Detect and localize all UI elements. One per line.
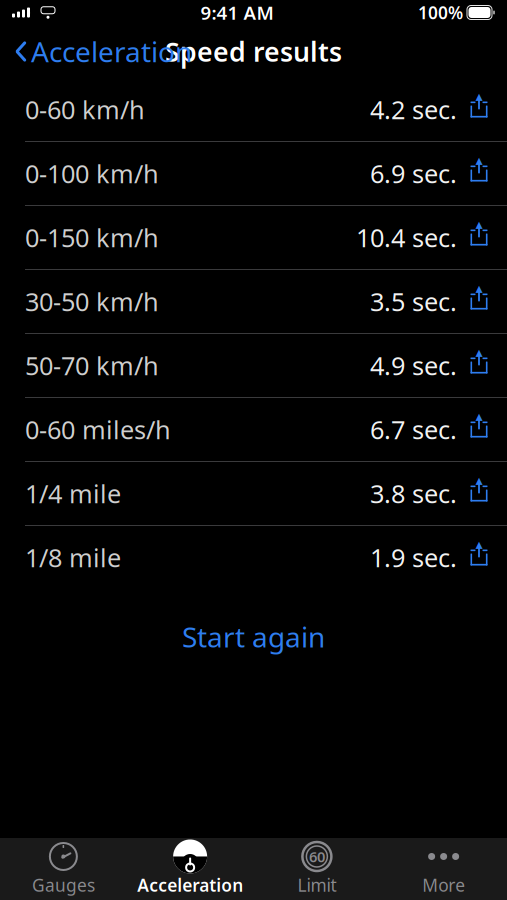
- staticText: 3.8 sec.: [370, 477, 457, 510]
- staticText: 50-70 km/h: [25, 349, 159, 382]
- staticText: ▲: [475, 475, 482, 486]
- staticText: ▲: [475, 219, 482, 230]
- button[interactable]: Acceleration: [127, 838, 254, 900]
- staticText: ▲: [475, 411, 482, 422]
- button[interactable]: Share 30-50 km/h result: [457, 281, 507, 321]
- staticText: 0-100 km/h: [25, 157, 159, 190]
- staticText: 6.7 sec.: [370, 413, 457, 446]
- staticText: ▲: [475, 283, 482, 294]
- button[interactable]: Share 0-60 km/h result: [457, 89, 507, 129]
- button[interactable]: Share 0-100 km/h result: [457, 153, 507, 193]
- staticText: Speed results: [165, 34, 342, 69]
- button[interactable]: Acceleration: [0, 25, 192, 78]
- staticText: Acceleration: [31, 33, 192, 70]
- button[interactable]: Start again: [0, 605, 507, 668]
- staticText: 9:41 AM: [200, 0, 273, 25]
- staticText: 0-150 km/h: [25, 221, 159, 254]
- staticText: 0-60 km/h: [25, 93, 145, 126]
- staticText: 60: [309, 847, 325, 866]
- staticText: 0-60 miles/h: [25, 413, 171, 446]
- button[interactable]: Share 1/4 mile result: [457, 473, 507, 513]
- staticText: 6.9 sec.: [370, 157, 457, 190]
- staticText: 4.9 sec.: [370, 349, 457, 382]
- staticText: 1/8 mile: [25, 541, 121, 574]
- button[interactable]: Share 0-150 km/h result: [457, 217, 507, 257]
- staticText: Acceleration: [137, 873, 243, 896]
- staticText: 1/4 mile: [25, 477, 121, 510]
- staticText: 4.2 sec.: [370, 93, 457, 126]
- staticText: More: [422, 873, 465, 896]
- staticText: ▲: [475, 91, 482, 102]
- button[interactable]: Share 0-60 miles/h result: [457, 409, 507, 449]
- staticText: 30-50 km/h: [25, 285, 159, 318]
- staticText: 10.4 sec.: [356, 221, 457, 254]
- button[interactable]: 60: [253, 838, 380, 900]
- staticText: 100%: [418, 1, 463, 24]
- staticText: 3.5 sec.: [370, 285, 457, 318]
- staticText: ▲: [475, 155, 482, 166]
- button[interactable]: Share 1/8 mile result: [457, 537, 507, 577]
- staticText: Start again: [182, 618, 325, 655]
- button[interactable]: Share 50-70 km/h result: [457, 345, 507, 385]
- button[interactable]: More: [380, 838, 507, 900]
- staticText: Limit: [297, 873, 336, 896]
- staticText: Gauges: [32, 873, 95, 896]
- staticText: 1.9 sec.: [370, 541, 457, 574]
- button[interactable]: Gauges: [0, 838, 127, 900]
- staticText: ▲: [475, 539, 482, 550]
- staticText: ▲: [475, 347, 482, 358]
